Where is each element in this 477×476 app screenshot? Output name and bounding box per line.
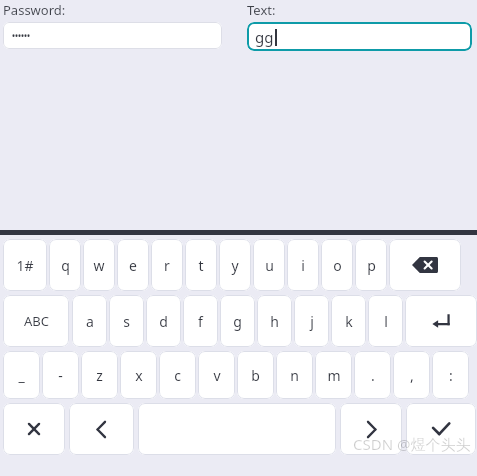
button[interactable]: b <box>237 351 274 399</box>
staticText: g <box>233 312 242 331</box>
button[interactable]: u <box>253 239 285 291</box>
staticText: •••••• <box>12 30 31 41</box>
button[interactable]: s <box>109 295 144 347</box>
staticText: ABC <box>24 312 49 330</box>
staticText: u <box>265 256 274 275</box>
button[interactable]: e <box>117 239 149 291</box>
button[interactable]: 1# <box>3 239 47 291</box>
staticText: r <box>164 256 170 275</box>
staticText: h <box>270 312 279 331</box>
button[interactable]: ABC <box>3 295 69 347</box>
staticText: e <box>129 256 137 275</box>
staticText: Password: <box>3 1 66 19</box>
button[interactable]: x <box>120 351 157 399</box>
staticText: . <box>371 366 375 385</box>
button[interactable]: y <box>219 239 251 291</box>
staticText: s <box>123 312 130 331</box>
button[interactable]: Enter <box>405 295 477 347</box>
staticText: b <box>251 366 260 385</box>
button[interactable]: m <box>315 351 352 399</box>
button[interactable]: f <box>183 295 218 347</box>
button[interactable]: . <box>354 351 391 399</box>
button[interactable]: w <box>83 239 115 291</box>
button[interactable]: l <box>368 295 403 347</box>
button[interactable]: Done <box>406 403 476 455</box>
staticText: , <box>410 366 414 385</box>
button[interactable]: r <box>151 239 183 291</box>
staticText: q <box>61 256 70 275</box>
button[interactable]: Next <box>340 403 402 455</box>
staticText: 1# <box>16 256 34 275</box>
staticText: v <box>213 366 221 385</box>
button[interactable]: t <box>185 239 217 291</box>
staticText: d <box>159 312 168 331</box>
button[interactable]: i <box>287 239 319 291</box>
staticText: x <box>135 366 143 385</box>
button[interactable]: : <box>432 351 469 399</box>
button[interactable]: Backspace <box>389 239 461 291</box>
button[interactable]: p <box>355 239 387 291</box>
staticText: i <box>301 256 305 275</box>
staticText: CSDN @煜个头头 <box>353 434 471 454</box>
button[interactable]: Close keyboard <box>3 403 65 455</box>
button[interactable]: q <box>49 239 81 291</box>
button[interactable]: c <box>159 351 196 399</box>
button[interactable]: g <box>220 295 255 347</box>
button[interactable]: - <box>42 351 79 399</box>
staticText: y <box>231 256 239 275</box>
button[interactable]: n <box>276 351 313 399</box>
staticText: j <box>310 312 314 331</box>
button[interactable]: Previous <box>69 403 134 455</box>
button[interactable]: j <box>294 295 329 347</box>
button[interactable]: gg <box>247 22 472 51</box>
button[interactable]: a <box>72 295 107 347</box>
button[interactable]: h <box>257 295 292 347</box>
staticText: o <box>333 256 342 275</box>
staticText: n <box>290 366 299 385</box>
staticText: gg <box>255 27 274 47</box>
button[interactable]: z <box>81 351 118 399</box>
staticText: k <box>345 312 353 331</box>
button[interactable]: Space <box>138 403 336 455</box>
staticText: f <box>198 312 203 331</box>
staticText: c <box>174 366 181 385</box>
staticText: l <box>384 312 388 331</box>
staticText: Text: <box>247 1 276 19</box>
staticText: a <box>86 312 94 331</box>
button[interactable]: o <box>321 239 353 291</box>
staticText: p <box>367 256 376 275</box>
staticText: w <box>93 256 105 275</box>
staticText: z <box>96 366 103 385</box>
staticText: : <box>449 366 453 385</box>
button[interactable]: •••••• <box>3 22 222 49</box>
staticText: m <box>327 366 341 385</box>
button[interactable]: d <box>146 295 181 347</box>
staticText: t <box>198 256 204 275</box>
button[interactable]: , <box>393 351 430 399</box>
staticText: _ <box>18 366 25 385</box>
button[interactable]: v <box>198 351 235 399</box>
button[interactable]: _ <box>3 351 40 399</box>
staticText: - <box>58 366 63 385</box>
button[interactable]: k <box>331 295 366 347</box>
